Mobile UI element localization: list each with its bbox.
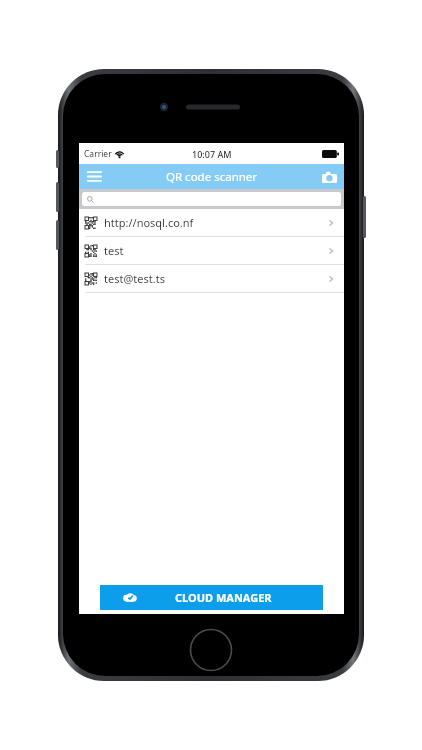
button[interactable]: test bbox=[79, 237, 344, 264]
staticText: test@test.ts bbox=[104, 271, 165, 286]
staticText: test bbox=[104, 243, 124, 258]
button[interactable]: Scan with camera bbox=[314, 164, 344, 189]
button[interactable] bbox=[82, 192, 341, 206]
staticText: 10:07 AM bbox=[192, 148, 232, 160]
staticText: QR code scanner bbox=[166, 169, 258, 185]
button[interactable]: CLOUD MANAGER bbox=[100, 585, 323, 610]
button[interactable]: Menu bbox=[79, 164, 109, 189]
staticText: Carrier bbox=[84, 148, 112, 160]
button[interactable]: test@test.ts bbox=[79, 265, 344, 292]
staticText: http://nosql.co.nf bbox=[104, 215, 194, 230]
button[interactable]: http://nosql.co.nf bbox=[79, 209, 344, 236]
staticText: CLOUD MANAGER bbox=[175, 590, 272, 605]
